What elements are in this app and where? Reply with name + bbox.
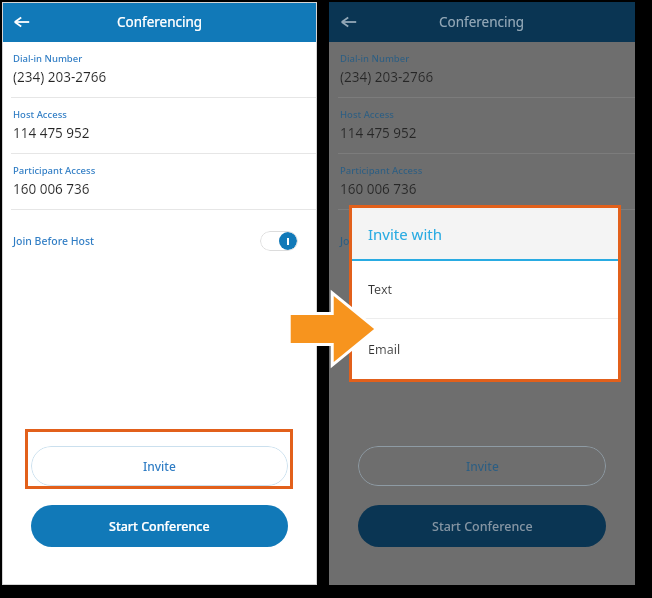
staticText: 114 475 952 [13, 124, 90, 142]
staticText: 114 475 952 [340, 124, 417, 142]
staticText: Conferencing [439, 13, 525, 31]
button[interactable]: Host Access [2, 98, 317, 154]
button[interactable]: Dial-in Number [2, 42, 317, 98]
button[interactable]: Text [352, 261, 618, 318]
button[interactable]: Back [7, 7, 37, 37]
button[interactable]: Join Before Host [2, 210, 317, 272]
staticText: Text [368, 281, 393, 298]
staticText: Conferencing [117, 13, 203, 31]
staticText: Invite [143, 458, 176, 474]
staticText: Start Conference [432, 518, 533, 535]
staticText: Participant Access [13, 164, 96, 177]
staticText: 160 006 736 [340, 180, 417, 198]
button[interactable]: Dial-in Number [329, 42, 635, 98]
staticText: Participant Access [340, 164, 423, 177]
button[interactable]: Host Access [329, 98, 635, 154]
button[interactable]: Email [352, 319, 618, 379]
staticText: Dial-in Number [13, 52, 83, 65]
button[interactable]: Participant Access [2, 154, 317, 210]
staticText: Invite with [368, 224, 442, 244]
staticText: (234) 203-2766 [340, 68, 434, 86]
staticText: Host Access [13, 108, 67, 121]
staticText: Start Conference [109, 518, 210, 535]
staticText: (234) 203-2766 [13, 68, 107, 86]
staticText: Email [368, 341, 401, 358]
staticText: 160 006 736 [13, 180, 90, 198]
staticText: Join Before Host [340, 234, 422, 248]
button[interactable]: Invite [31, 446, 288, 486]
staticText: Join Before Host [13, 234, 95, 248]
button[interactable]: Join Before Host [329, 210, 635, 272]
staticText: Invite [466, 458, 499, 474]
button[interactable]: Start Conference [358, 505, 606, 547]
staticText: Dial-in Number [340, 52, 410, 65]
button[interactable]: Start Conference [31, 505, 288, 547]
staticText: Host Access [340, 108, 394, 121]
button[interactable]: Participant Access [329, 154, 635, 210]
button[interactable]: Invite [358, 446, 606, 486]
button[interactable]: Back [334, 7, 364, 37]
